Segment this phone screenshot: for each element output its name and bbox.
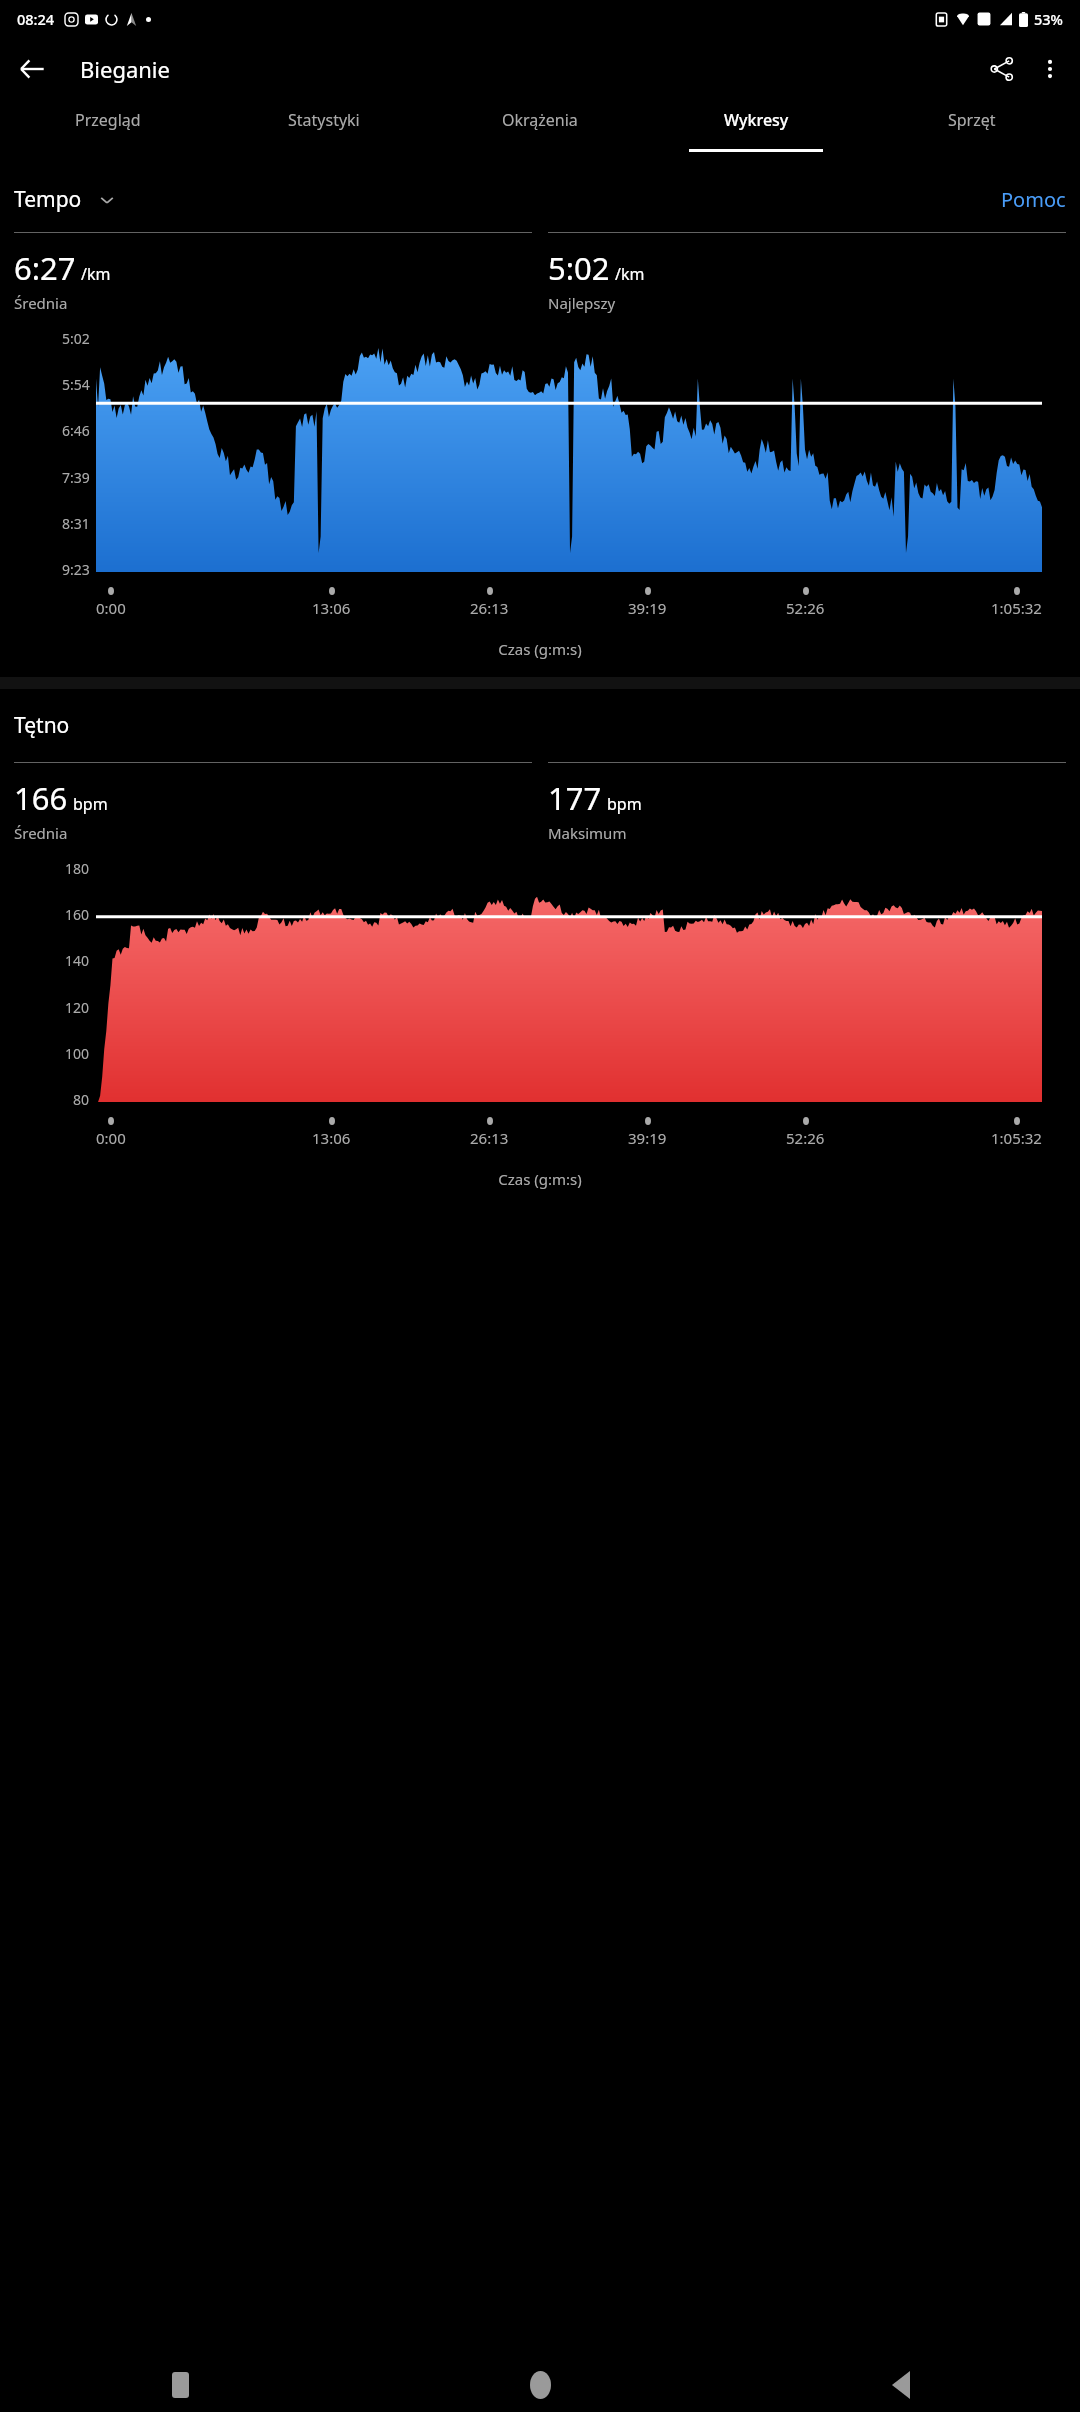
staticText: 140: [65, 951, 90, 970]
button[interactable]: Home: [360, 2358, 720, 2412]
staticText: 6:46: [62, 421, 90, 440]
staticText: Średnia: [14, 293, 68, 313]
staticText: 180: [65, 859, 90, 878]
staticText: 120: [65, 998, 90, 1017]
staticText: 26:13: [470, 598, 509, 618]
button[interactable]: Pomoc: [1001, 186, 1066, 213]
staticText: Statystyki: [288, 109, 360, 131]
staticText: /km: [81, 263, 111, 285]
button[interactable]: Back: [8, 45, 56, 93]
staticText: 1:05:32: [991, 1128, 1042, 1148]
staticText: 0:00: [96, 598, 126, 618]
staticText: 0:00: [96, 1128, 126, 1148]
staticText: Bieganie: [80, 54, 170, 84]
button[interactable]: Wykresy: [648, 100, 864, 152]
staticText: Średnia: [14, 823, 68, 843]
button[interactable]: Tempo: [14, 185, 116, 214]
staticText: 52:26: [786, 598, 825, 618]
button[interactable]: Sprzęt: [864, 100, 1080, 152]
staticText: Czas (g:m:s): [0, 1169, 1080, 1189]
staticText: 52:26: [786, 1128, 825, 1148]
staticText: 53%: [1034, 9, 1063, 29]
button[interactable]: Share: [978, 45, 1026, 93]
staticText: 39:19: [628, 1128, 667, 1148]
staticText: 39:19: [628, 598, 667, 618]
staticText: Okrążenia: [502, 109, 578, 131]
staticText: 08:24: [17, 9, 55, 29]
staticText: Przegląd: [75, 109, 141, 131]
staticText: Maksimum: [548, 823, 627, 843]
staticText: 26:13: [470, 1128, 509, 1148]
staticText: Czas (g:m:s): [0, 639, 1080, 659]
button[interactable]: Okrążenia: [432, 100, 648, 152]
staticText: 7:39: [62, 468, 90, 487]
staticText: bpm: [607, 793, 642, 815]
staticText: Pomoc: [1001, 186, 1066, 213]
staticText: Sprzęt: [948, 109, 996, 131]
staticText: 160: [65, 905, 90, 924]
staticText: Tętno: [14, 711, 70, 740]
staticText: 177: [548, 777, 602, 819]
staticText: 100: [65, 1044, 90, 1063]
staticText: 5:02: [548, 247, 610, 289]
button[interactable]: Statystyki: [216, 100, 432, 152]
button[interactable]: Back: [720, 2358, 1080, 2412]
staticText: 13:06: [312, 1128, 351, 1148]
button[interactable]: Przegląd: [0, 100, 216, 152]
staticText: 5:54: [62, 375, 90, 394]
staticText: Wykresy: [724, 109, 789, 131]
staticText: 9:23: [62, 560, 90, 579]
staticText: /km: [615, 263, 645, 285]
staticText: Najlepszy: [548, 293, 616, 313]
staticText: 80: [73, 1090, 90, 1109]
staticText: 166: [14, 777, 68, 819]
staticText: 5:02: [62, 329, 90, 348]
staticText: 6:27: [14, 247, 76, 289]
staticText: Tempo: [14, 185, 82, 214]
staticText: 1:05:32: [991, 598, 1042, 618]
staticText: 8:31: [62, 514, 90, 533]
staticText: bpm: [73, 793, 108, 815]
button[interactable]: Recent apps: [0, 2358, 360, 2412]
staticText: 13:06: [312, 598, 351, 618]
button[interactable]: More options: [1026, 45, 1074, 93]
